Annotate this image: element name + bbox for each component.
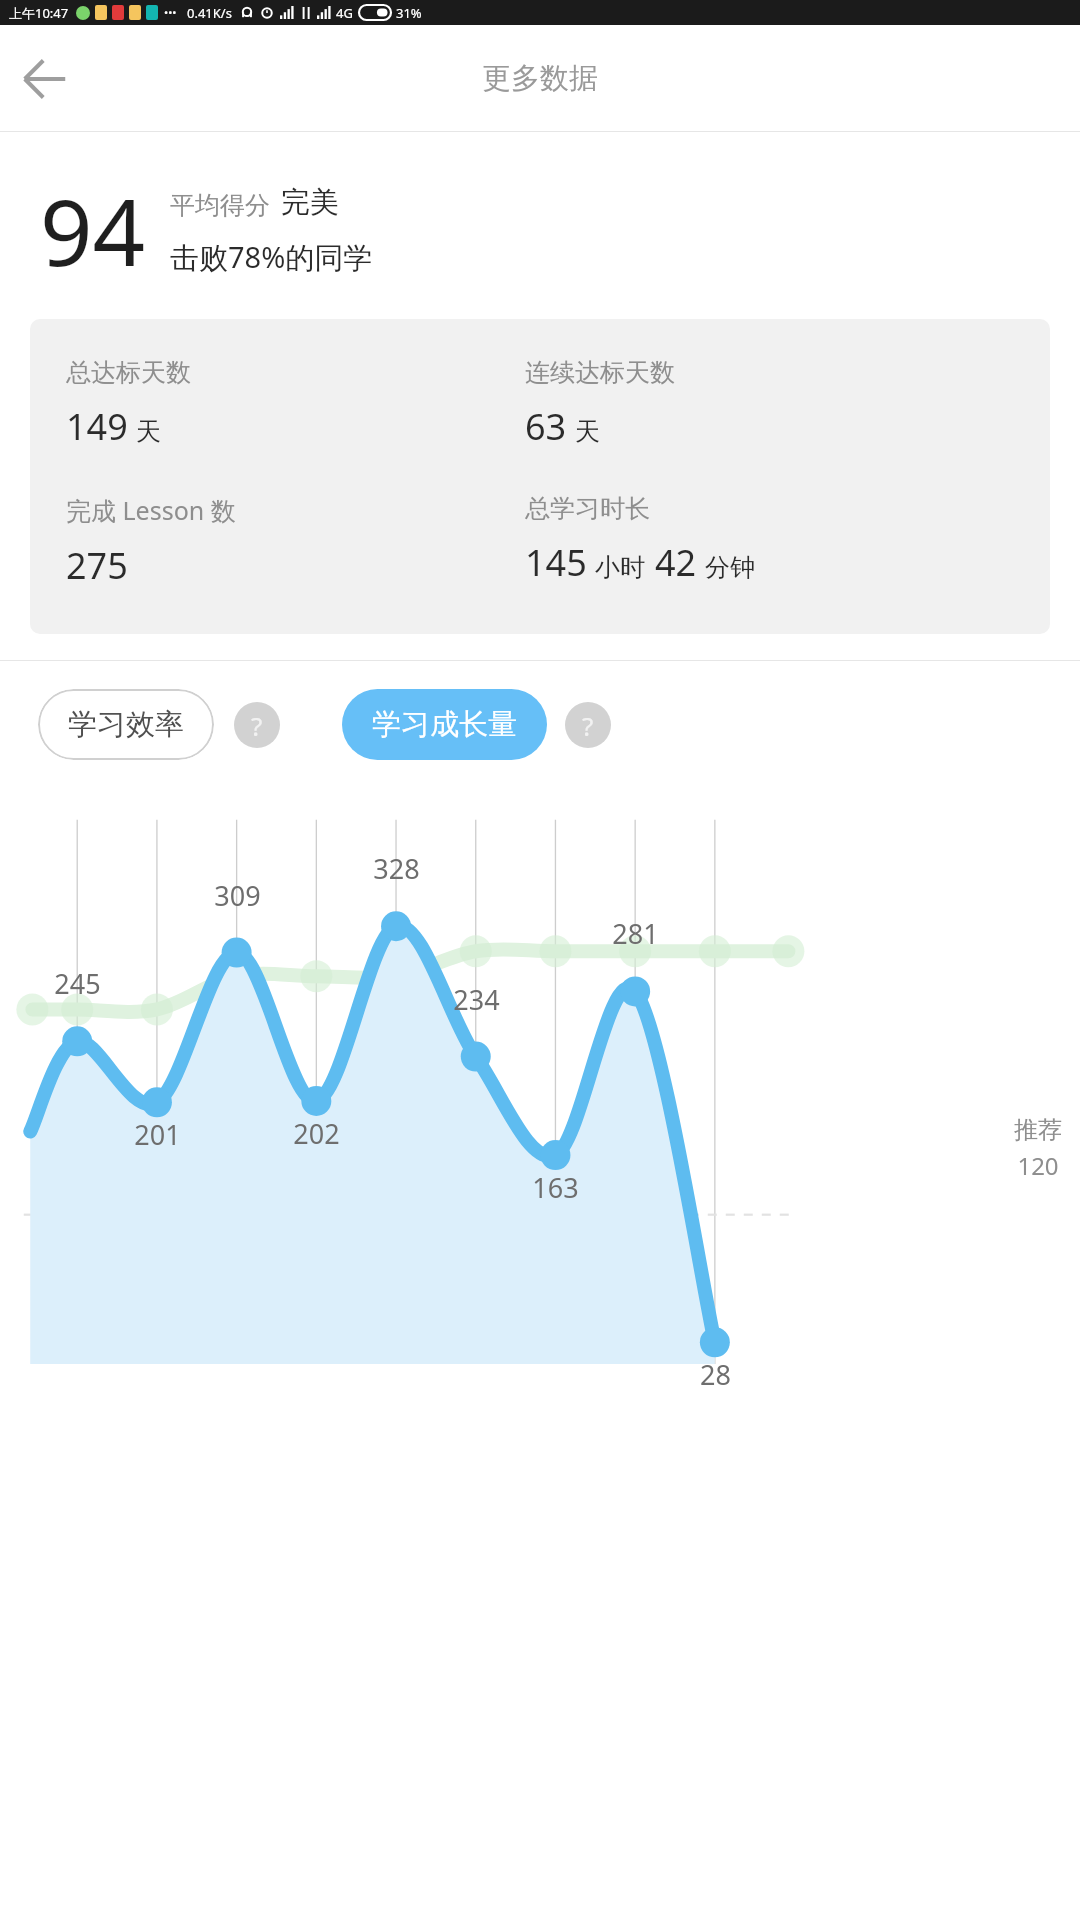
staticText: 天: [136, 416, 161, 447]
staticText: 4G: [336, 4, 353, 22]
staticText: 94: [40, 168, 146, 293]
staticText: 120: [1017, 1149, 1059, 1182]
staticText: 281: [612, 915, 659, 952]
staticText: 推荐: [1014, 1115, 1062, 1145]
staticText: 309: [214, 877, 261, 914]
staticText: 完成 Lesson 数: [66, 493, 236, 527]
staticText: 145: [525, 538, 587, 587]
staticText: 天: [575, 416, 600, 447]
staticText: ?: [582, 708, 594, 743]
staticText: 42: [655, 538, 697, 587]
button[interactable]: 学习效率: [38, 689, 214, 760]
staticText: 28: [700, 1356, 731, 1393]
staticText: 更多数据: [482, 60, 598, 97]
staticText: 小时: [595, 552, 645, 583]
staticText: 学习成长量: [372, 706, 517, 743]
staticText: 275: [66, 541, 128, 590]
staticText: 上午10:47: [9, 4, 69, 22]
staticText: 完美: [281, 184, 339, 221]
staticText: 328: [373, 850, 420, 887]
button[interactable]: Back: [6, 40, 84, 118]
staticText: 149: [66, 402, 128, 451]
button[interactable]: Help: [565, 702, 611, 748]
staticText: 163: [532, 1169, 579, 1206]
staticText: 总学习时长: [525, 493, 650, 524]
staticText: 平均得分: [170, 190, 270, 221]
staticText: 202: [293, 1115, 340, 1152]
staticText: 连续达标天数: [525, 357, 675, 388]
button[interactable]: Help: [234, 702, 280, 748]
staticText: 总达标天数: [66, 357, 191, 388]
staticText: 击败78%的同学: [170, 237, 373, 277]
staticText: 分钟: [705, 552, 755, 583]
staticText: 31%: [396, 4, 422, 22]
staticText: 201: [134, 1116, 181, 1153]
staticText: •••: [164, 5, 177, 20]
button[interactable]: 学习成长量: [342, 689, 547, 760]
staticText: 学习效率: [68, 706, 184, 743]
button[interactable]: 总达标天数: [30, 319, 1050, 634]
staticText: 245: [54, 965, 101, 1002]
staticText: 63: [525, 402, 567, 451]
staticText: 0.41K/s: [187, 4, 232, 22]
staticText: ?: [251, 708, 263, 743]
staticText: 234: [453, 981, 500, 1018]
